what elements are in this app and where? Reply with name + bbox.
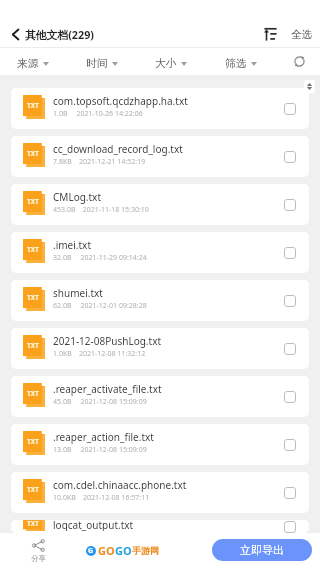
staticText: .reaper_action_file.txt	[53, 430, 154, 444]
staticText: TXT	[27, 341, 39, 350]
staticText: 2021-12-08PushLog.txt	[53, 334, 162, 348]
button[interactable]: TXT	[11, 88, 309, 129]
button[interactable]: Scroll	[304, 80, 315, 93]
staticText: GO	[115, 543, 132, 558]
staticText: TXT	[27, 437, 39, 446]
button[interactable]: TXT	[11, 280, 309, 321]
button[interactable]: TXT	[11, 184, 309, 225]
staticText: TXT	[27, 520, 39, 528]
staticText: 1.0KB 2021-12-08 11:32:12	[53, 349, 146, 359]
button[interactable]: 时间	[67, 50, 136, 77]
staticText: com.cdel.chinaacc.phone.txt	[53, 478, 187, 492]
button[interactable]: TXT	[11, 136, 309, 177]
staticText: cc_download_record_log.txt	[53, 142, 183, 156]
staticText: 全选	[291, 28, 312, 41]
button[interactable]: 分享	[0, 533, 76, 569]
staticText: TXT	[27, 149, 39, 158]
staticText: 立即导出	[240, 543, 284, 557]
button[interactable]: Select	[278, 481, 302, 505]
button[interactable]: 立即导出	[212, 539, 312, 561]
staticText: 13.0B 2021-12-08 15:09:09	[53, 445, 147, 455]
staticText: 453.0B 2021-11-18 15:30:10	[53, 205, 149, 215]
button[interactable]: Select	[278, 337, 302, 361]
staticText: 其他文档(229)	[25, 27, 95, 42]
button[interactable]: 大小	[136, 50, 206, 77]
staticText: 大小	[155, 57, 177, 71]
button[interactable]: Select	[278, 385, 302, 409]
button[interactable]: Sort	[256, 20, 284, 48]
staticText: com.topsoft.qcdzhapp.ha.txt	[53, 94, 188, 108]
staticText: 1.0B 2021-10-26 14:22:06	[53, 109, 143, 119]
button[interactable]: 筛选	[206, 50, 276, 77]
staticText: 32.0B 2021-11-29 09:14:24	[53, 253, 147, 263]
staticText: 7.8KB 2021-12-21 14:52:19	[53, 157, 146, 167]
staticText: 手游网	[132, 545, 159, 556]
staticText: TXT	[27, 197, 39, 206]
staticText: 筛选	[225, 57, 247, 71]
staticText: 10.0KB 2021-12-08 16:57:11	[53, 493, 150, 503]
button[interactable]: 全选	[291, 20, 312, 48]
button[interactable]: 来源	[0, 50, 67, 77]
staticText: 时间	[86, 57, 108, 71]
staticText: GO	[98, 543, 115, 558]
button[interactable]: TXT	[11, 520, 309, 533]
staticText: .reaper_activate_file.txt	[53, 382, 162, 396]
button[interactable]: TXT	[11, 376, 309, 417]
staticText: CMLog.txt	[53, 190, 102, 204]
staticText: TXT	[27, 293, 39, 302]
staticText: 45.0B 2021-12-08 15:09:09	[53, 397, 147, 407]
button[interactable]: Back	[0, 20, 25, 48]
button[interactable]: Select	[278, 520, 302, 533]
button[interactable]: TXT	[11, 328, 309, 369]
button[interactable]: TXT	[11, 472, 309, 513]
button[interactable]: Select	[278, 97, 302, 121]
staticText: 62.0B 2021-12-01 09:28:28	[53, 301, 147, 311]
button[interactable]: Select	[278, 145, 302, 169]
button[interactable]: Select	[278, 193, 302, 217]
button[interactable]: Select	[278, 289, 302, 313]
staticText: shumei.txt	[53, 286, 103, 300]
staticText: 来源	[17, 57, 39, 71]
button[interactable]: TXT	[11, 232, 309, 273]
button[interactable]: Select	[278, 241, 302, 265]
button[interactable]: TXT	[11, 424, 309, 465]
staticText: 分享	[31, 554, 46, 563]
staticText: .imei.txt	[53, 238, 92, 252]
staticText: TXT	[27, 101, 39, 110]
button[interactable]: Select	[278, 433, 302, 457]
staticText: TXT	[27, 245, 39, 254]
staticText: G	[88, 546, 94, 556]
button[interactable]: Refresh	[278, 48, 320, 75]
staticText: logcat_output.txt	[53, 520, 134, 531]
staticText: TXT	[27, 485, 39, 494]
staticText: TXT	[27, 389, 39, 398]
